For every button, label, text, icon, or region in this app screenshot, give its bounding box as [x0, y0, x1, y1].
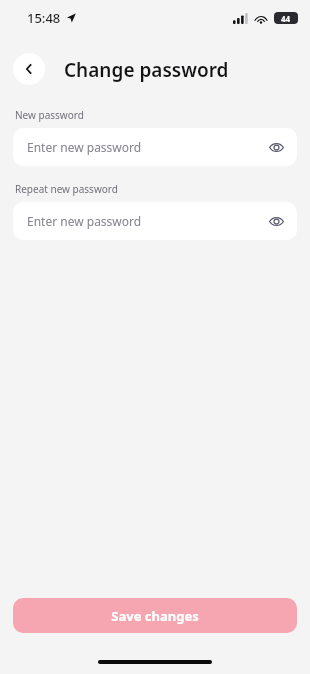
button[interactable]: Save changes — [13, 598, 297, 633]
staticText: Save changes — [111, 607, 199, 625]
button[interactable]: Back — [13, 53, 45, 85]
button[interactable]: Enter new password — [13, 202, 297, 240]
staticText: Change password — [64, 57, 229, 83]
staticText: Enter new password — [27, 213, 142, 229]
staticText: 15:48 — [27, 9, 61, 27]
button[interactable]: Show password — [263, 208, 289, 234]
staticText: New password — [15, 108, 84, 122]
button[interactable]: Enter new password — [13, 128, 297, 166]
button[interactable]: Show password — [263, 134, 289, 160]
staticText: 44 — [281, 13, 291, 24]
staticText: Repeat new password — [15, 182, 118, 196]
staticText: Enter new password — [27, 139, 142, 155]
